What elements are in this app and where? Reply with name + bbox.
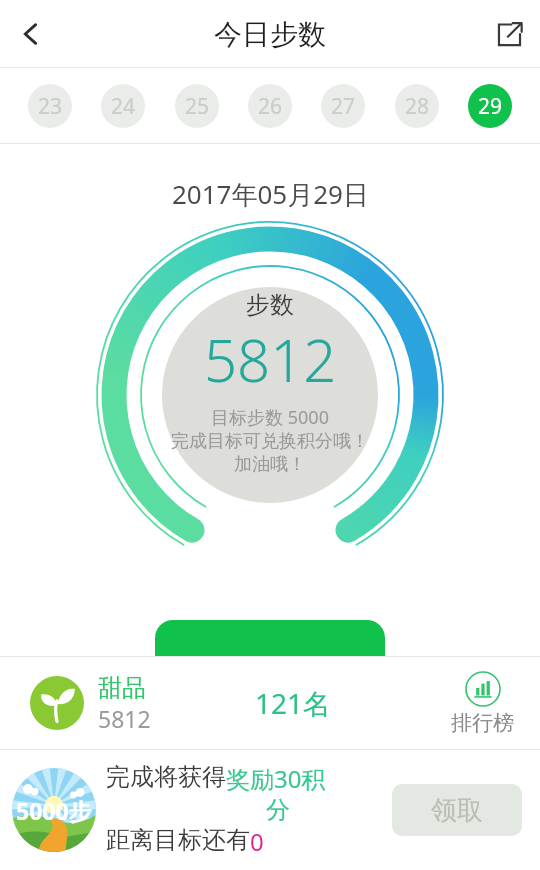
button[interactable]: 领取 [392,784,522,836]
staticText: 25 [185,92,210,121]
button[interactable]: 26 [248,84,292,128]
staticText: 5812 [98,703,151,734]
staticText: 5812 [204,320,337,399]
button[interactable]: Back [0,3,62,65]
button[interactable]: 28 [395,84,439,128]
staticText: 28 [405,92,430,121]
staticText: 完成目标可兑换积分哦！ [171,430,369,453]
staticText: 甜品 [98,673,146,703]
button[interactable]: 29 [468,84,512,128]
button[interactable]: 24 [101,84,145,128]
staticText: 今日步数 [214,17,326,52]
staticText: 距离目标还有 [106,825,250,855]
button[interactable]: 25 [175,84,219,128]
button[interactable]: 23 [28,84,72,128]
staticText: 分 [106,795,290,825]
staticText: 27 [331,92,356,121]
staticText: 29 [478,92,503,121]
button[interactable]: 排行榜 [447,671,518,736]
staticText: 排行榜 [451,710,514,736]
staticText: 2017年05月29日 [172,176,369,212]
button[interactable]: Start walking [155,620,385,656]
staticText: 5000步 [16,795,92,826]
staticText: 目标步数 5000 [211,405,329,430]
staticText: 完成将获得 [106,762,226,792]
staticText: 24 [111,92,136,121]
button[interactable]: 27 [321,84,365,128]
staticText: 121名 [255,684,332,722]
staticText: 23 [38,92,63,121]
staticText: 0 [250,825,264,858]
staticText: 26 [258,92,283,121]
staticText: 奖励30积 [226,762,326,795]
button[interactable]: Share [478,3,540,65]
staticText: 步数 [246,290,294,320]
staticText: 加油哦！ [234,453,306,476]
button[interactable]: 甜品 [0,657,540,749]
staticText: 领取 [431,794,483,827]
